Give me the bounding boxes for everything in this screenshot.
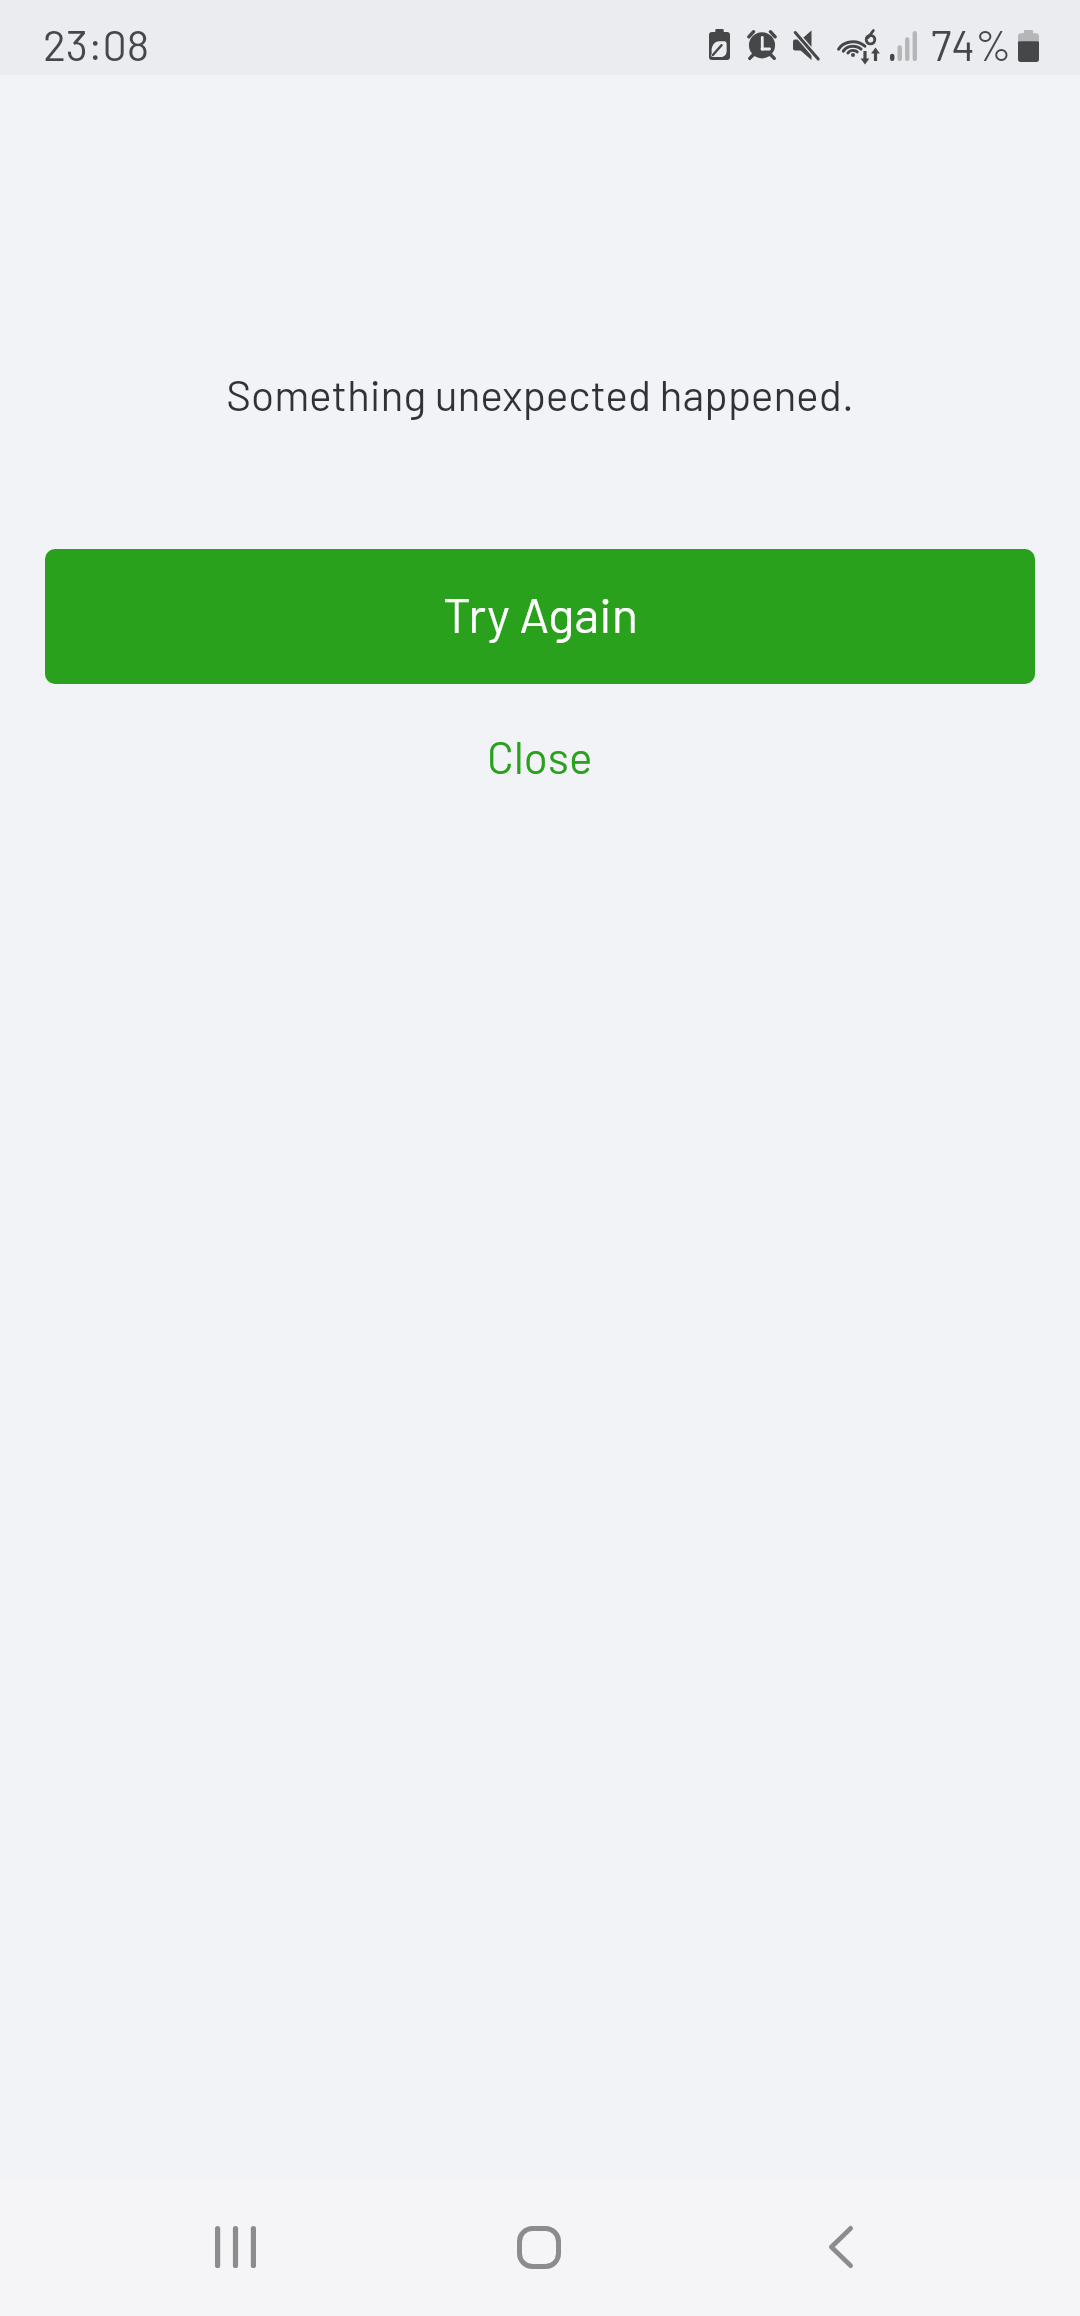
staticText: Something unexpected happened. — [0, 368, 1080, 419]
button[interactable]: Home — [449, 2180, 629, 2314]
button[interactable]: Back — [751, 2180, 931, 2314]
staticText: Close — [487, 730, 593, 783]
staticText: 74% — [931, 18, 1012, 70]
staticText: 23:08 — [43, 18, 150, 70]
staticText: Try Again — [443, 584, 638, 643]
button[interactable]: Close — [0, 692, 1080, 820]
button[interactable]: Recent apps — [145, 2180, 325, 2314]
button[interactable]: Try Again — [45, 549, 1035, 684]
